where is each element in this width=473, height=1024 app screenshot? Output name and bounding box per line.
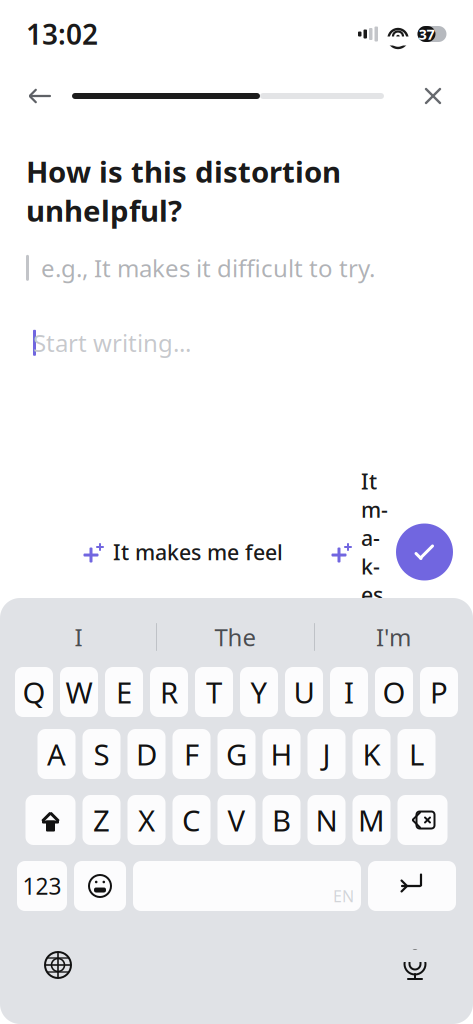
button[interactable]: Y bbox=[240, 667, 278, 717]
staticText: It makes me feel bbox=[113, 538, 283, 566]
staticText: R bbox=[160, 672, 178, 711]
button[interactable]: 123 bbox=[17, 861, 67, 911]
staticText: K bbox=[362, 734, 380, 773]
staticText: G bbox=[226, 734, 247, 773]
staticText: I bbox=[344, 672, 354, 711]
staticText: Start writing... bbox=[33, 327, 191, 359]
staticText: J bbox=[322, 734, 330, 773]
staticText: C bbox=[182, 800, 201, 839]
button[interactable]: E bbox=[105, 667, 143, 717]
button[interactable]: B bbox=[262, 795, 300, 845]
button[interactable]: Z bbox=[82, 795, 120, 845]
staticText: The bbox=[214, 621, 256, 653]
button[interactable]: I bbox=[1, 612, 156, 662]
button[interactable]: W bbox=[60, 667, 98, 717]
button[interactable]: Start writing... bbox=[0, 284, 473, 364]
button[interactable]: I'm bbox=[315, 612, 472, 662]
button[interactable]: Switch keyboard bbox=[28, 935, 88, 995]
staticText: How is this distortion unhelpful? bbox=[26, 152, 341, 230]
staticText: 123 bbox=[22, 871, 61, 901]
staticText: EN bbox=[333, 885, 354, 907]
staticText: O bbox=[382, 672, 405, 711]
button[interactable]: C bbox=[172, 795, 210, 845]
staticText: B bbox=[272, 800, 291, 839]
staticText: N bbox=[315, 800, 337, 839]
button[interactable]: K bbox=[352, 729, 390, 779]
staticText: T bbox=[206, 672, 222, 711]
button[interactable]: Q bbox=[15, 667, 53, 717]
staticText: 13:02 bbox=[26, 15, 98, 53]
staticText: F bbox=[184, 734, 199, 773]
button[interactable]: D bbox=[127, 729, 165, 779]
staticText: S bbox=[93, 734, 109, 773]
button[interactable]: R bbox=[150, 667, 188, 717]
button[interactable]: Return bbox=[368, 861, 456, 911]
button[interactable]: I bbox=[330, 667, 368, 717]
button[interactable]: O bbox=[375, 667, 413, 717]
button[interactable]: Emoji bbox=[74, 861, 126, 911]
button[interactable]: T bbox=[195, 667, 233, 717]
button[interactable]: Done bbox=[396, 523, 453, 580]
staticText: L bbox=[409, 734, 424, 773]
staticText: E bbox=[116, 672, 132, 711]
staticText: I'm bbox=[376, 621, 411, 653]
staticText: A bbox=[47, 734, 66, 773]
button[interactable]: G bbox=[217, 729, 255, 779]
button[interactable]: V bbox=[217, 795, 255, 845]
button[interactable]: S bbox=[82, 729, 120, 779]
button[interactable]: Shift bbox=[25, 795, 75, 845]
button[interactable]: L bbox=[397, 729, 435, 779]
staticText: 37 bbox=[418, 24, 434, 44]
button[interactable]: H bbox=[262, 729, 300, 779]
staticText: e.g., It makes it difficult to try. bbox=[41, 252, 375, 284]
staticText: Y bbox=[250, 672, 267, 711]
button[interactable]: P bbox=[420, 667, 458, 717]
button[interactable]: Back bbox=[18, 74, 62, 118]
button[interactable]: M bbox=[352, 795, 390, 845]
button[interactable]: N bbox=[307, 795, 345, 845]
staticText: X bbox=[138, 800, 155, 839]
staticText: M bbox=[358, 800, 385, 839]
button[interactable]: F bbox=[172, 729, 210, 779]
button[interactable]: J bbox=[307, 729, 345, 779]
staticText: U bbox=[293, 672, 314, 711]
staticText: H bbox=[270, 734, 292, 773]
button[interactable]: U bbox=[285, 667, 323, 717]
button[interactable]: Delete bbox=[397, 795, 447, 845]
button[interactable]: X bbox=[127, 795, 165, 845]
staticText: P bbox=[430, 672, 448, 711]
button[interactable]: Space bbox=[133, 861, 361, 911]
staticText: It makes bbox=[361, 467, 388, 637]
button[interactable]: Close bbox=[411, 74, 455, 118]
staticText: Z bbox=[93, 800, 110, 839]
button[interactable]: The bbox=[157, 612, 314, 662]
button[interactable]: It makes bbox=[331, 459, 388, 645]
staticText: D bbox=[136, 734, 157, 773]
staticText: Q bbox=[22, 672, 45, 711]
button[interactable]: Dictate bbox=[385, 935, 445, 995]
staticText: I bbox=[74, 621, 82, 653]
staticText: V bbox=[227, 800, 245, 839]
button[interactable]: It makes me feel bbox=[83, 530, 283, 574]
button[interactable]: A bbox=[37, 729, 75, 779]
staticText: W bbox=[65, 672, 92, 711]
